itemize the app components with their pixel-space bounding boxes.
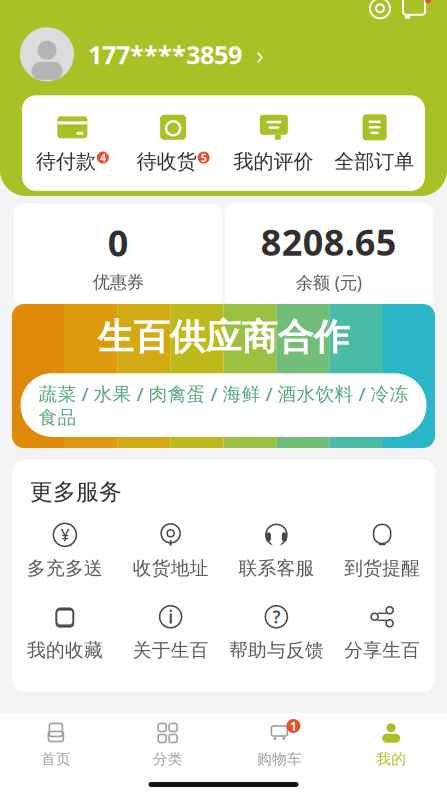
button[interactable]: 分类 [112,713,224,768]
button[interactable]: ? [223,600,329,666]
button[interactable]: 待收货 [123,108,224,178]
staticText: 待付款 [36,149,96,174]
staticText: 优惠券 [93,271,144,293]
staticText: i [168,605,173,628]
button[interactable]: i [118,600,224,666]
staticText: 1 [290,718,297,734]
staticText: 联系客服 [238,557,314,580]
staticText: 收货地址 [133,557,209,580]
button[interactable]: 设置 [363,0,397,25]
staticText: 0 [108,219,129,266]
button[interactable]: 联系客服 [223,518,329,584]
staticText: 我的收藏 [27,639,103,662]
staticText: 生百供应商合作 [97,315,349,359]
staticText: 余额 (元) [296,271,362,294]
button[interactable]: 全部订单 [324,108,425,178]
button[interactable]: 我的评价 [223,108,324,178]
button[interactable]: 生百供应商合作 [0,304,447,448]
button[interactable]: 177****3859 [0,27,447,81]
staticText: 全部订单 [334,149,414,174]
staticText: 4 [100,150,106,165]
button[interactable]: 待付款 [22,108,123,178]
staticText: 177****3859 [88,37,242,71]
staticText: 分类 [153,750,183,768]
button[interactable]: 我的 [335,713,447,768]
staticText: 8208.65 [261,218,397,266]
button[interactable]: 到货提醒 [329,518,435,584]
staticText: 购物车 [257,750,302,768]
staticText: 蔬菜 / 水果 / 肉禽蛋 / 海鲜 / 酒水饮料 / 冷冻食品 [38,381,408,429]
staticText: ¥ [60,524,69,545]
button[interactable]: 收货地址 [118,518,224,584]
button[interactable]: 首页 [0,713,112,768]
button[interactable]: ¥ [12,518,118,584]
staticText: 到货提醒 [344,557,420,580]
button[interactable]: 分享生百 [329,600,435,666]
staticText: 待收货 [137,149,197,174]
staticText: › [256,37,264,71]
button[interactable]: 1 [223,713,335,768]
staticText: 首页 [41,750,71,768]
staticText: 分享生百 [344,639,420,662]
staticText: 5 [201,150,207,165]
staticText: 我的 [376,750,406,768]
staticText: 我的评价 [233,149,313,174]
button[interactable]: 我的收藏 [12,600,118,666]
staticText: 关于生百 [133,639,209,662]
staticText: 帮助与反馈 [229,639,324,662]
staticText: 更多服务 [30,478,122,506]
button[interactable]: 消息 [397,0,431,25]
button[interactable]: 8208.65 [224,203,433,309]
staticText: ? [272,605,280,628]
staticText: 多充多送 [27,557,103,580]
button[interactable]: 0 [14,204,222,308]
